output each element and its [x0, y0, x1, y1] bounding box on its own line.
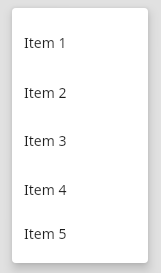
staticText: Item 3: [24, 131, 67, 150]
button[interactable]: Item 4: [12, 165, 148, 213]
staticText: Item 1: [24, 33, 67, 52]
button[interactable]: Item 5: [12, 209, 148, 257]
button[interactable]: Item 3: [12, 116, 148, 164]
button[interactable]: Item 1: [12, 18, 148, 66]
staticText: Item 5: [24, 224, 67, 243]
staticText: Item 4: [24, 180, 67, 199]
button[interactable]: Item 2: [12, 68, 148, 116]
staticText: Item 2: [24, 83, 67, 102]
